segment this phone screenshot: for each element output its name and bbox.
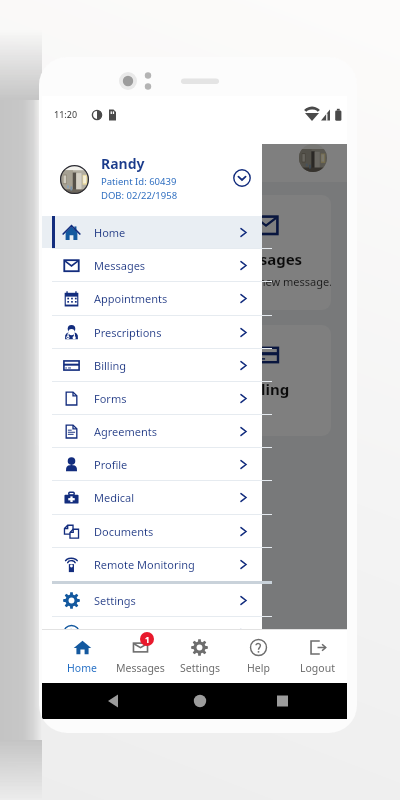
button[interactable]: Settings: [42, 584, 262, 616]
button[interactable]: Billing: [200, 325, 331, 436]
button[interactable]: Home: [42, 216, 262, 248]
button[interactable]: Forms: [42, 382, 262, 414]
staticText: Medical: [94, 490, 135, 505]
staticText: 11:20: [54, 108, 78, 120]
staticText: Settings: [94, 593, 136, 608]
staticText: 1: [145, 634, 150, 645]
button[interactable]: Settings: [170, 630, 229, 683]
button[interactable]: Switch patient: [233, 169, 251, 187]
button[interactable]: Prescriptions: [58, 325, 189, 436]
staticText: Remote Monitoring: [94, 557, 195, 572]
button[interactable]: Appointments: [58, 195, 189, 310]
button[interactable]: Help: [229, 630, 288, 683]
staticText: Forms: [94, 391, 127, 406]
staticText: Randy: [101, 154, 145, 173]
button[interactable]: Medical: [42, 481, 262, 513]
button[interactable]: Logout: [288, 630, 347, 683]
button[interactable]: Prescriptions: [42, 316, 262, 348]
button[interactable]: Appointments: [42, 282, 262, 314]
button[interactable]: Profile: [42, 448, 262, 480]
staticText: Profile: [94, 457, 128, 472]
staticText: Settings: [180, 661, 220, 675]
staticText: Messages: [116, 661, 165, 675]
button[interactable]: Billing: [42, 349, 262, 381]
staticText: Prescriptions: [94, 325, 162, 340]
button[interactable]: Messages: [42, 249, 262, 281]
staticText: Help: [247, 661, 270, 675]
staticText: No upcoming visits.: [73, 274, 175, 289]
staticText: Appointments: [70, 249, 177, 269]
button[interactable]: 1: [111, 630, 170, 683]
staticText: Help: [94, 626, 118, 641]
button[interactable]: Help: [42, 617, 262, 649]
staticText: Prescriptions: [74, 379, 173, 399]
staticText: Messages: [229, 249, 303, 269]
button[interactable]: Documents: [42, 515, 262, 547]
staticText: Patient Id: 60439: [101, 175, 177, 188]
staticText: Messages: [94, 258, 146, 273]
staticText: Agreements: [94, 424, 158, 439]
staticText: Home: [67, 661, 97, 675]
button[interactable]: Remote Monitoring: [42, 548, 262, 580]
button[interactable]: Messages: [200, 195, 331, 310]
staticText: Billing: [94, 358, 127, 373]
button[interactable]: Agreements: [42, 415, 262, 447]
button[interactable]: Home: [53, 630, 111, 683]
staticText: Home: [94, 225, 126, 240]
staticText: Appointments: [94, 291, 168, 306]
staticText: DOB: 02/22/1958: [101, 189, 178, 202]
staticText: Billing: [242, 379, 290, 399]
staticText: Documents: [94, 524, 154, 539]
staticText: Logout: [300, 661, 335, 675]
staticText: You have 1 new message.: [200, 274, 331, 289]
